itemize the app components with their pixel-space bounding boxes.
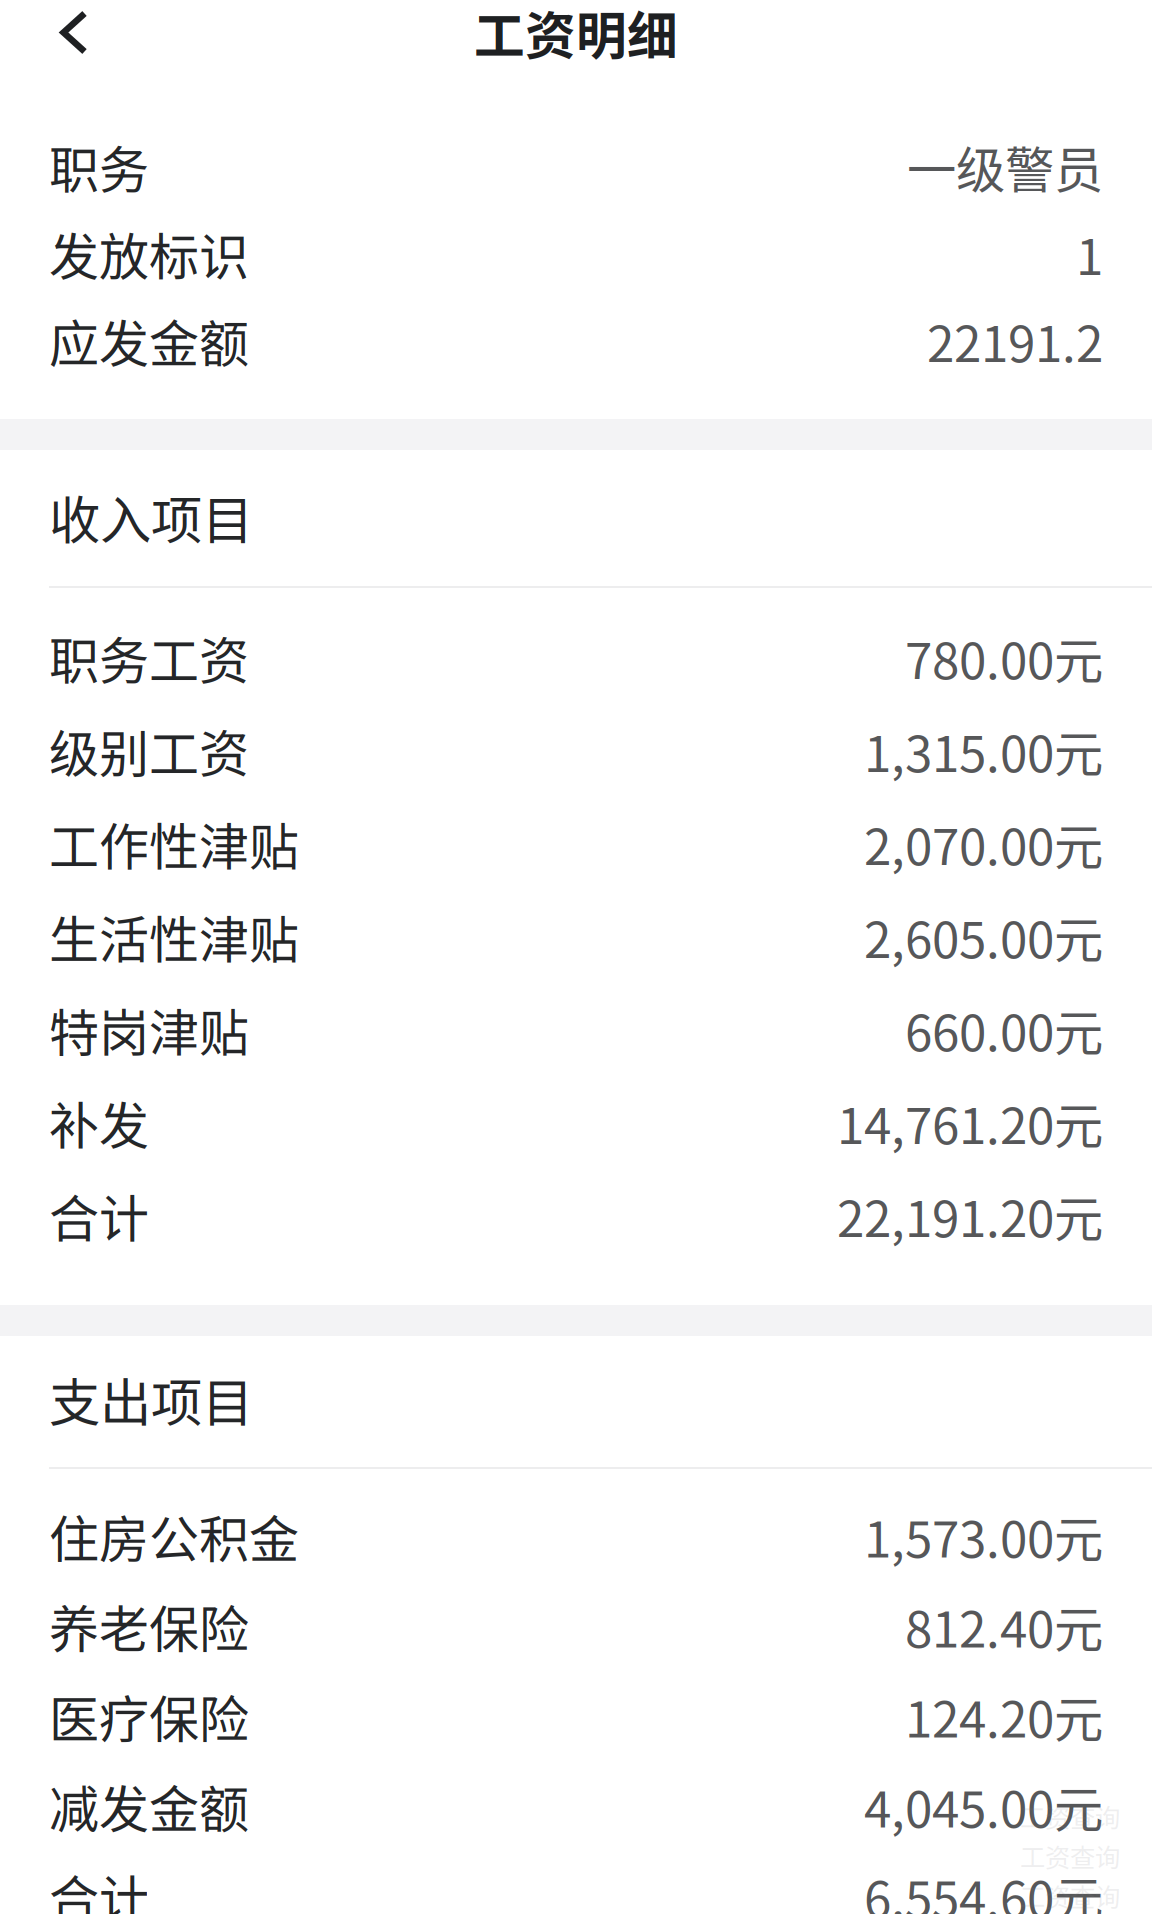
staticText: 780.00元: [905, 622, 1103, 693]
staticText: 6,554.60元: [864, 1860, 1103, 1914]
staticText: 1,315.00元: [864, 715, 1103, 786]
staticText: 工资明细: [474, 0, 678, 69]
staticText: 发放标识: [49, 217, 249, 290]
staticText: 工作性津贴: [49, 807, 299, 880]
staticText: 职务: [49, 130, 149, 203]
staticText: 660.00元: [905, 994, 1103, 1065]
button[interactable]: 住房公积金: [0, 1491, 1152, 1581]
staticText: 1: [1076, 218, 1103, 289]
staticText: 减发金额: [49, 1770, 249, 1842]
staticText: 4,045.00元: [864, 1770, 1103, 1842]
staticText: 支出项目: [49, 1362, 253, 1436]
button[interactable]: 职务: [0, 123, 1152, 210]
button[interactable]: Back: [0, 0, 148, 64]
staticText: 补发: [49, 1086, 149, 1159]
staticText: 124.20元: [905, 1680, 1103, 1752]
button[interactable]: 级别工资: [0, 704, 1152, 797]
staticText: 医疗保险: [49, 1680, 249, 1752]
button[interactable]: 减发金额: [0, 1761, 1152, 1851]
button[interactable]: 特岗津贴: [0, 983, 1152, 1076]
staticText: 应发金额: [49, 304, 249, 377]
staticText: 2,070.00元: [864, 808, 1103, 879]
button[interactable]: 应发金额: [0, 297, 1152, 384]
staticText: 工资查询: [1020, 1798, 1120, 1835]
button[interactable]: 工作性津贴: [0, 797, 1152, 890]
staticText: 14,761.20元: [837, 1087, 1103, 1158]
staticText: 2,605.00元: [864, 901, 1103, 972]
staticText: 一级警员: [907, 131, 1103, 202]
staticText: 合计: [49, 1860, 149, 1914]
button[interactable]: 合计: [0, 1851, 1152, 1914]
staticText: 812.40元: [905, 1590, 1103, 1662]
button[interactable]: 生活性津贴: [0, 890, 1152, 983]
button[interactable]: 合计: [0, 1169, 1152, 1262]
staticText: 22191.2: [927, 305, 1103, 376]
staticText: 住房公积金: [49, 1500, 299, 1572]
staticText: 收入项目: [49, 479, 253, 554]
button[interactable]: 发放标识: [0, 210, 1152, 297]
staticText: 生活性津贴: [49, 900, 299, 973]
staticText: 1,573.00元: [864, 1500, 1103, 1572]
button[interactable]: 补发: [0, 1076, 1152, 1169]
button[interactable]: 医疗保险: [0, 1671, 1152, 1761]
staticText: 级别工资: [49, 714, 249, 787]
staticText: 职务工资: [49, 621, 249, 694]
staticText: 特岗津贴: [49, 993, 249, 1066]
staticText: 工资查询: [1020, 1838, 1120, 1874]
staticText: 养老保险: [49, 1590, 249, 1662]
button[interactable]: 养老保险: [0, 1581, 1152, 1671]
staticText: 22,191.20元: [837, 1180, 1103, 1251]
staticText: 合计: [49, 1179, 149, 1252]
staticText: 工资查询: [1020, 1877, 1120, 1914]
button[interactable]: 职务工资: [0, 611, 1152, 704]
